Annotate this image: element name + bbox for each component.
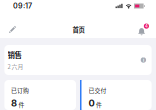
button[interactable]: Notifications bbox=[137, 23, 149, 35]
staticText: 09:17 bbox=[13, 2, 32, 10]
button[interactable]: 已交付 bbox=[80, 80, 152, 110]
staticText: 件 bbox=[96, 100, 102, 109]
staticText: 8 bbox=[11, 97, 17, 109]
staticText: 已交付 bbox=[88, 86, 106, 94]
staticText: 已订购 bbox=[11, 86, 29, 94]
staticText: 2 六月 bbox=[8, 62, 24, 71]
staticText: 首页 bbox=[72, 25, 84, 34]
button[interactable]: 已订购 bbox=[4, 80, 76, 110]
button[interactable]: Compose bbox=[5, 22, 19, 36]
staticText: i bbox=[143, 57, 144, 63]
staticText: 销售 bbox=[8, 49, 22, 60]
staticText: 0 bbox=[88, 97, 94, 109]
staticText: 4 bbox=[145, 23, 148, 29]
staticText: 件 bbox=[19, 100, 25, 109]
button[interactable]: 销售 bbox=[4, 45, 152, 75]
